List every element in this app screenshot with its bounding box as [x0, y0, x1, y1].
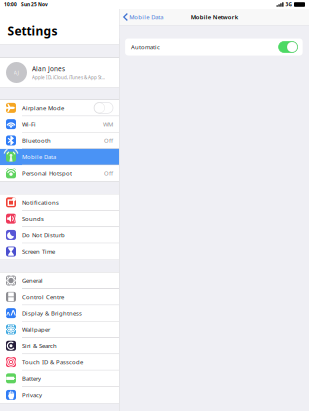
staticText: Mobile Data — [22, 153, 56, 161]
staticText: Notifications — [22, 198, 59, 206]
button[interactable]: Automatic — [125, 38, 303, 55]
staticText: Wi-Fi — [22, 120, 36, 128]
button[interactable]: Siri & Search — [0, 338, 119, 354]
button[interactable]: Battery — [0, 370, 119, 387]
button[interactable]: Personal Hotspot — [0, 165, 119, 181]
button[interactable]: Wi-Fi — [0, 116, 119, 133]
staticText: Personal Hotspot — [22, 169, 72, 177]
button[interactable]: Wallpaper — [0, 322, 119, 338]
button[interactable]: Control Centre — [0, 289, 119, 305]
staticText: Battery — [22, 374, 41, 382]
staticText: Bluetooth — [22, 136, 51, 144]
button[interactable]: Notifications — [0, 194, 119, 211]
staticText: Apple ID, iCloud, iTunes & App St... — [32, 74, 105, 81]
staticText: Sounds — [22, 215, 44, 223]
staticText: Control Centre — [22, 293, 64, 301]
staticText: Sun 25 Nov — [21, 1, 48, 8]
button[interactable]: Bluetooth — [0, 133, 119, 149]
staticText: Mobile Data — [129, 13, 163, 21]
staticText: Airplane Mode — [22, 104, 64, 112]
staticText: WM — [103, 120, 113, 128]
staticText: Display & Brightness — [22, 309, 82, 317]
staticText: Privacy — [22, 391, 42, 399]
staticText: Settings — [7, 23, 57, 39]
button[interactable]: Airplane Mode — [0, 100, 119, 116]
staticText: Screen Time — [22, 247, 55, 255]
staticText: Siri & Search — [22, 342, 57, 350]
staticText: Off — [104, 136, 113, 144]
button[interactable]: Touch ID & Passcode — [0, 354, 119, 370]
staticText: 10:00 — [4, 1, 17, 8]
button[interactable]: Privacy — [0, 387, 119, 403]
staticText: 3G — [285, 1, 291, 8]
staticText: Mobile Network — [191, 13, 238, 21]
staticText: AJ — [13, 69, 19, 76]
staticText: Wallpaper — [22, 325, 50, 333]
button[interactable]: Screen Time — [0, 243, 119, 260]
button[interactable]: Sounds — [0, 211, 119, 227]
staticText: Automatic — [131, 43, 160, 51]
staticText: Off — [104, 169, 113, 177]
button[interactable]: Mobile Data — [120, 10, 166, 24]
staticText: Touch ID & Passcode — [22, 358, 83, 366]
staticText: Do Not Disturb — [22, 231, 65, 239]
staticText: General — [22, 277, 43, 285]
button[interactable]: General — [0, 273, 119, 289]
button[interactable]: AJ — [0, 58, 119, 87]
button[interactable]: Do Not Disturb — [0, 227, 119, 243]
button[interactable]: Display & Brightness — [0, 305, 119, 322]
staticText: Alan Jones — [32, 64, 65, 73]
button[interactable]: Mobile Data — [0, 149, 119, 165]
